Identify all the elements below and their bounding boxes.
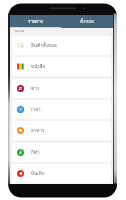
staticText: ทั้งหมด — [80, 18, 95, 25]
button[interactable]: ข่าว — [12, 79, 111, 98]
staticText: สินค้าทั้งหมด — [31, 42, 57, 49]
staticText: เวลา — [31, 106, 41, 113]
staticText: กีฬา — [31, 149, 40, 156]
staticText: บันเทิง — [31, 170, 44, 177]
button[interactable]: หนังสือ — [12, 57, 111, 76]
button[interactable]: อาหาร — [12, 121, 111, 140]
staticText: หนังสือ — [31, 63, 45, 70]
button[interactable]: รายการ — [10, 15, 61, 27]
staticText: หมวด — [15, 28, 25, 34]
button[interactable]: เวลา — [12, 100, 111, 119]
staticText: ข่าว — [31, 85, 40, 92]
button[interactable]: บันเทิง — [12, 164, 111, 183]
staticText: รายการ — [28, 18, 44, 25]
staticText: อาหาร — [31, 127, 45, 134]
button[interactable]: กีฬา — [12, 143, 111, 162]
button[interactable]: สินค้าทั้งหมด — [12, 36, 111, 55]
button[interactable]: ทั้งหมด — [61, 15, 113, 27]
